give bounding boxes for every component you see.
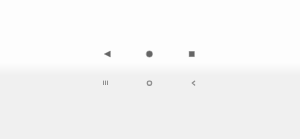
button[interactable]: Home (134, 67, 166, 99)
button[interactable]: Recent apps (90, 67, 122, 99)
button[interactable]: Record (130, 34, 170, 74)
button[interactable]: Back (178, 67, 210, 99)
button[interactable]: Stop (172, 34, 212, 74)
button[interactable]: Rewind (88, 34, 128, 74)
